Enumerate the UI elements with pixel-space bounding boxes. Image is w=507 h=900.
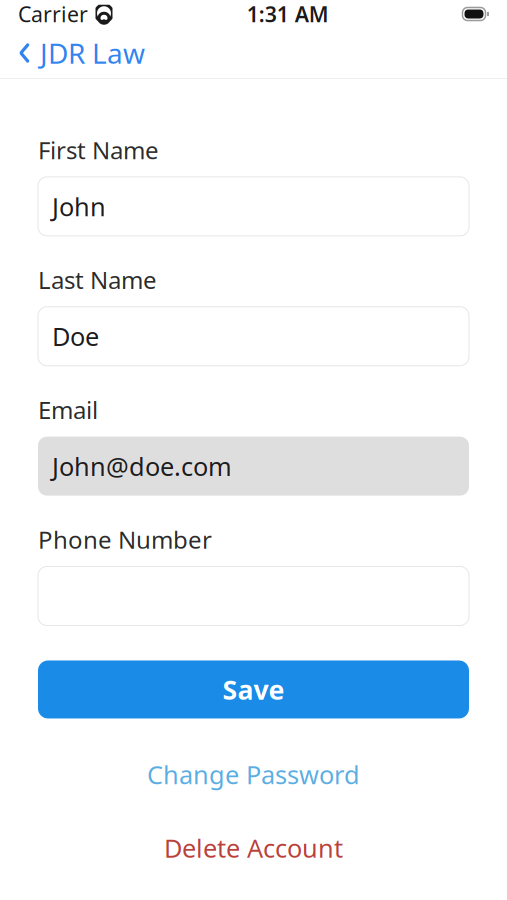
button[interactable]: JDR Law — [0, 26, 157, 80]
button[interactable]: Change Password — [38, 749, 469, 799]
staticText: Doe — [52, 319, 99, 353]
staticText: John — [52, 190, 106, 223]
button[interactable]: Doe — [38, 307, 469, 366]
staticText: Email — [38, 394, 98, 426]
staticText: John@doe.com — [52, 449, 232, 483]
staticText: Change Password — [147, 757, 360, 791]
staticText: Last Name — [38, 264, 157, 296]
staticText: JDR Law — [40, 34, 145, 72]
staticText: Carrier — [18, 0, 88, 28]
button[interactable]: John — [38, 177, 469, 236]
button[interactable] — [38, 566, 469, 625]
staticText: Delete Account — [164, 831, 343, 865]
staticText: First Name — [38, 134, 159, 166]
staticText: 1:31 AM — [247, 0, 329, 28]
button[interactable]: John@doe.com — [38, 437, 469, 496]
button[interactable]: Save — [38, 660, 469, 718]
staticText: Phone Number — [38, 524, 212, 555]
staticText: Save — [222, 672, 284, 707]
button[interactable]: Delete Account — [38, 823, 469, 873]
